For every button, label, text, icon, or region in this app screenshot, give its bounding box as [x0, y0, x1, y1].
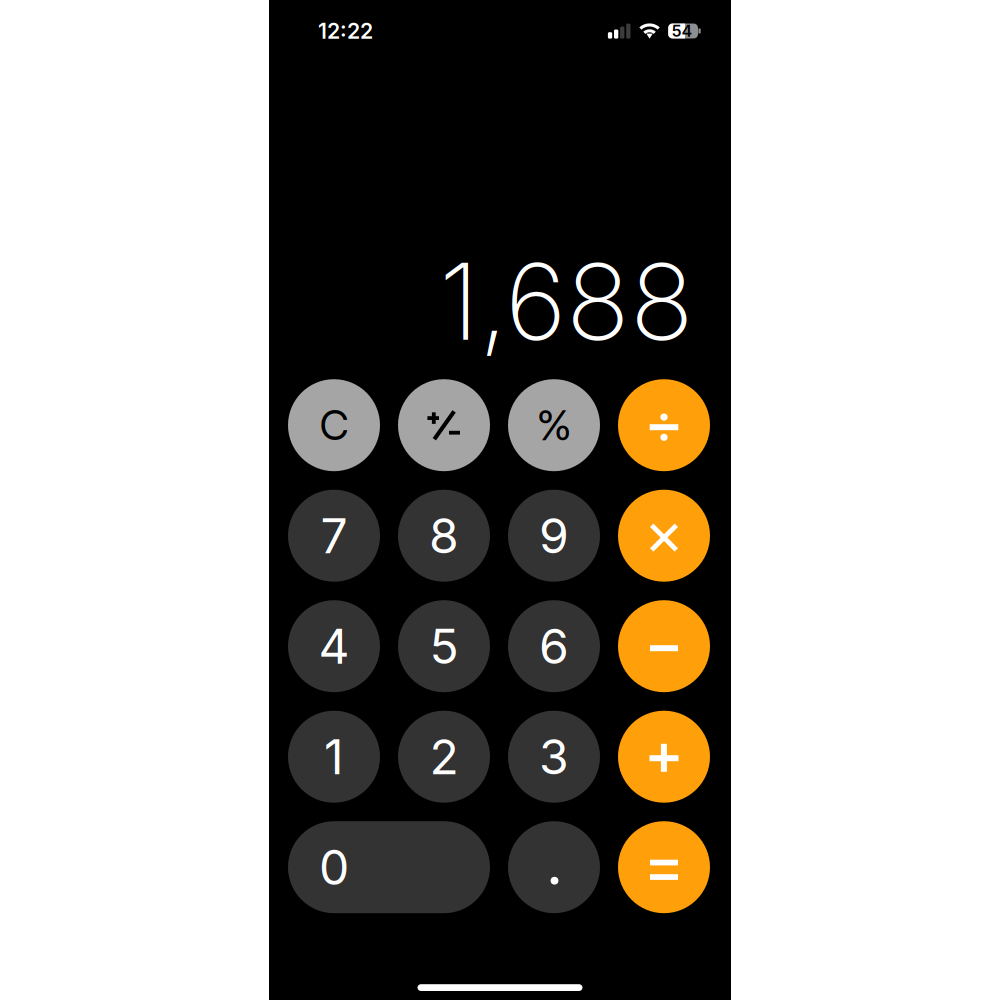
staticText: C: [319, 401, 348, 450]
staticText: 3: [539, 728, 569, 786]
button[interactable]: 9: [508, 490, 600, 582]
button[interactable]: 2: [398, 711, 490, 803]
button[interactable]: %: [508, 379, 600, 471]
staticText: 12:22: [318, 18, 373, 44]
staticText: 6: [539, 617, 569, 675]
button[interactable]: Multiply: [618, 490, 710, 582]
button[interactable]: 7: [288, 490, 380, 582]
button[interactable]: 6: [508, 600, 600, 692]
button[interactable]: 5: [398, 600, 490, 692]
button[interactable]: 0: [288, 821, 490, 913]
button[interactable]: Plus: [618, 711, 710, 803]
staticText: %: [536, 400, 571, 450]
button[interactable]: 1: [288, 711, 380, 803]
staticText: 1: [324, 728, 344, 786]
staticText: 0: [319, 838, 349, 896]
staticText: 1,688: [439, 238, 694, 365]
button[interactable]: Equals: [618, 821, 710, 913]
staticText: 5: [429, 617, 458, 675]
staticText: 4: [318, 617, 349, 675]
button[interactable]: 4: [288, 600, 380, 692]
staticText: 9: [539, 507, 569, 565]
button[interactable]: Decimal point: [508, 821, 600, 913]
button[interactable]: Plus or minus: [398, 379, 490, 471]
staticText: 7: [320, 507, 347, 565]
button[interactable]: Divide: [618, 379, 710, 471]
button[interactable]: C: [288, 379, 380, 471]
staticText: 54: [672, 21, 693, 41]
button[interactable]: Minus: [618, 600, 710, 692]
staticText: 8: [429, 507, 459, 565]
button[interactable]: 3: [508, 711, 600, 803]
button[interactable]: 8: [398, 490, 490, 582]
staticText: 2: [429, 728, 458, 786]
